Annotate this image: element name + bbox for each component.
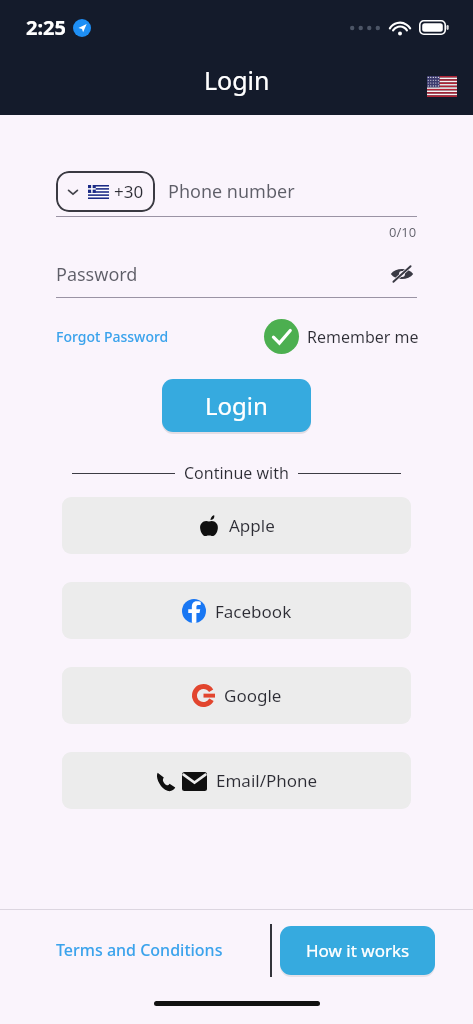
staticText: Password <box>56 262 138 287</box>
button[interactable]: Login <box>162 379 311 432</box>
staticText: Login <box>204 63 270 97</box>
button[interactable]: Email/Phone <box>62 752 411 809</box>
staticText: 0/10 <box>389 223 417 241</box>
button[interactable]: Forgot Password <box>56 324 169 349</box>
button[interactable]: Facebook <box>62 582 411 639</box>
staticText: Terms and Conditions <box>56 939 223 961</box>
button[interactable]: Terms and Conditions <box>56 933 223 967</box>
button[interactable]: Remember me <box>264 316 419 357</box>
button[interactable]: Change language <box>427 76 457 97</box>
staticText: Forgot Password <box>56 327 169 346</box>
staticText: Email/Phone <box>216 769 318 792</box>
staticText: Phone number <box>168 179 295 204</box>
staticText: +30 <box>114 180 144 203</box>
staticText: Remember me <box>307 326 419 348</box>
staticText: How it works <box>306 939 410 962</box>
staticText: Google <box>224 684 282 707</box>
staticText: Login <box>205 389 268 422</box>
button[interactable]: +30 <box>56 171 155 212</box>
button[interactable]: Google <box>62 667 411 724</box>
staticText: 2:25 <box>26 14 66 41</box>
button[interactable]: How it works <box>280 926 435 975</box>
staticText: Facebook <box>215 600 292 623</box>
staticText: Continue with <box>184 462 289 484</box>
button[interactable]: Apple <box>62 497 411 554</box>
button[interactable]: Show password <box>385 257 419 291</box>
staticText: Apple <box>229 514 275 537</box>
